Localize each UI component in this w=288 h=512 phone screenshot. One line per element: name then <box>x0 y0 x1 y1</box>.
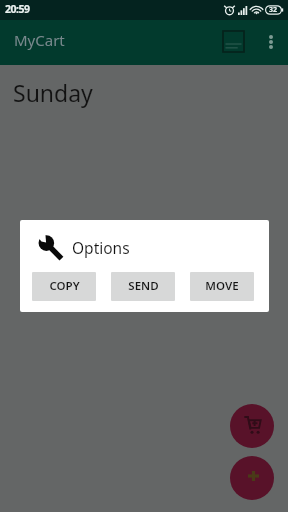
staticText: 32 <box>269 5 278 15</box>
button[interactable]: COPY <box>32 272 96 301</box>
button[interactable]: Notes <box>212 20 256 65</box>
staticText: MOVE <box>205 278 239 294</box>
button[interactable]: Add item <box>230 456 274 500</box>
button[interactable]: MOVE <box>190 272 254 301</box>
staticText: 20:59 <box>5 2 30 16</box>
staticText: SEND <box>128 278 159 294</box>
button[interactable]: Add to cart <box>230 404 274 448</box>
button[interactable]: SEND <box>111 272 175 301</box>
staticText: MyCart <box>14 30 65 50</box>
staticText: Options <box>72 237 130 258</box>
button[interactable]: More options <box>256 20 288 65</box>
staticText: COPY <box>49 278 80 294</box>
staticText: Sunday <box>13 77 93 108</box>
